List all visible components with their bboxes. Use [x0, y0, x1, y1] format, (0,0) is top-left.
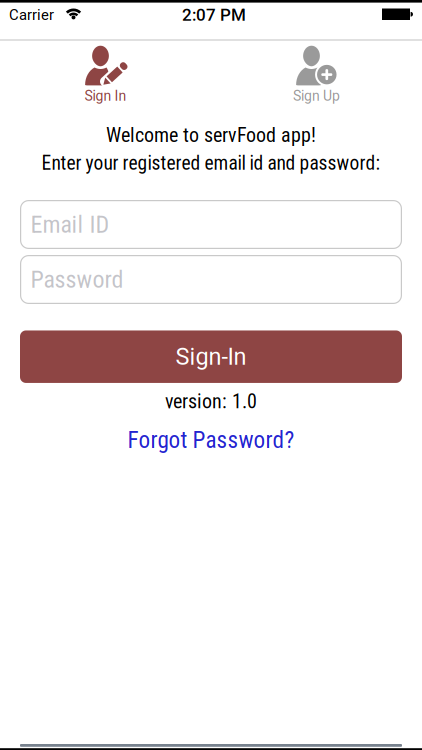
- staticText: Sign Up: [293, 88, 340, 104]
- staticText: 2:07 PM: [182, 5, 246, 25]
- button[interactable]: Password: [20, 255, 402, 304]
- staticText: Welcome to servFood app!: [106, 123, 316, 147]
- button[interactable]: Sign In: [0, 39, 211, 107]
- staticText: Email ID: [30, 210, 109, 238]
- staticText: Password: [30, 265, 123, 293]
- staticText: Forgot Password?: [127, 426, 294, 454]
- staticText: version: 1.0: [165, 390, 257, 413]
- staticText: Enter your registered email id and passw…: [41, 152, 380, 175]
- button[interactable]: Forgot Password?: [127, 426, 294, 454]
- button[interactable]: Sign-In: [20, 330, 402, 383]
- button[interactable]: Email ID: [20, 200, 402, 249]
- staticText: Sign-In: [175, 343, 246, 370]
- button[interactable]: Sign Up: [211, 39, 422, 107]
- staticText: Carrier: [9, 6, 54, 24]
- staticText: Sign In: [84, 88, 126, 104]
